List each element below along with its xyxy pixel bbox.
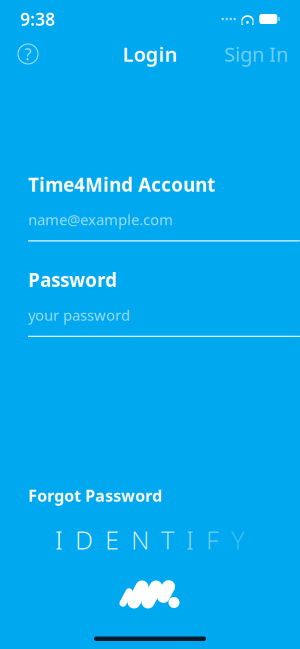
staticText: your password: [28, 305, 130, 325]
staticText: N: [131, 523, 149, 556]
staticText: D: [75, 523, 93, 556]
staticText: Password: [28, 267, 117, 292]
staticText: I: [55, 523, 63, 556]
staticText: Sign In: [224, 41, 288, 67]
staticText: Y: [231, 523, 245, 556]
staticText: Forgot Password: [28, 485, 162, 506]
staticText: name@example.com: [28, 210, 173, 229]
staticText: ?: [24, 43, 31, 65]
button[interactable]: Help: [12, 38, 44, 70]
staticText: Time4Mind Account: [28, 172, 215, 197]
staticText: F: [206, 523, 219, 556]
button[interactable]: name@example.com: [28, 210, 300, 241]
staticText: E: [105, 523, 119, 556]
button[interactable]: your password: [28, 305, 300, 337]
staticText: Login: [122, 41, 177, 67]
button[interactable]: Sign In: [224, 35, 288, 73]
button[interactable]: Forgot Password: [28, 481, 162, 510]
staticText: I: [186, 523, 194, 556]
staticText: T: [161, 523, 174, 556]
staticText: 9:38: [20, 7, 55, 30]
